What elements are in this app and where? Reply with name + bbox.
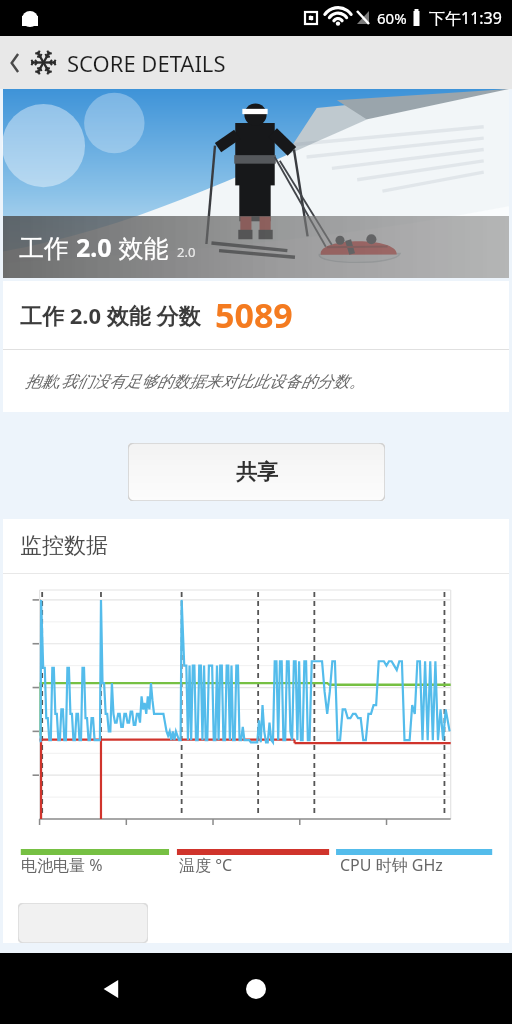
button[interactable]: Back <box>90 967 134 1011</box>
staticText: 5089 <box>215 292 293 338</box>
button[interactable]: 监控数据 <box>3 519 509 573</box>
staticText: SCORE DETAILS <box>67 48 226 78</box>
staticText: 下午11:39 <box>429 7 502 29</box>
staticText: CPU 时钟 GHz <box>340 854 443 876</box>
staticText: 抱歉,我们没有足够的数据来对比此设备的分数。 <box>25 370 366 392</box>
staticText: 工作 <box>19 230 76 264</box>
staticText: 电池电量 % <box>21 854 103 876</box>
button[interactable] <box>18 903 148 943</box>
button[interactable]: Back <box>0 36 30 89</box>
staticText: 共享 <box>236 459 278 485</box>
staticText: 效能 <box>112 230 169 264</box>
staticText: 60% <box>377 8 407 28</box>
staticText: 温度 °C <box>179 854 233 876</box>
button[interactable]: 共享 <box>128 443 385 501</box>
staticText: 2.0 <box>76 230 112 264</box>
staticText: 监控数据 <box>20 532 108 560</box>
staticText: 2.0 <box>177 243 196 261</box>
staticText: 工作 2.0 效能 分数 <box>20 300 201 330</box>
button[interactable]: Home <box>234 967 278 1011</box>
button[interactable]: 工作 2.0 效能 分数 <box>3 281 509 349</box>
